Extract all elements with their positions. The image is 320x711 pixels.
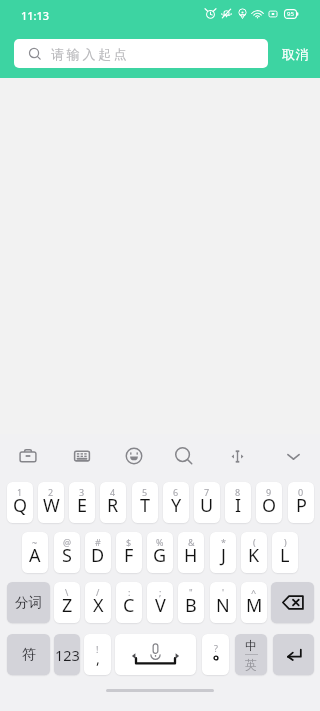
staticText: ) [284, 536, 287, 548]
button[interactable]: 4 [100, 482, 126, 523]
button[interactable]: ; [147, 582, 173, 623]
button[interactable]: Emoji [117, 439, 151, 473]
staticText: ; [159, 586, 162, 598]
staticText: * [221, 536, 226, 548]
staticText: D [91, 543, 105, 568]
staticText: 0 [298, 486, 304, 498]
staticText: 4 [110, 486, 116, 498]
button[interactable]: 5 [132, 482, 158, 523]
button[interactable]: Backspace [271, 582, 314, 623]
staticText: H [184, 543, 198, 568]
staticText: 3 [79, 486, 85, 498]
staticText: B [185, 593, 197, 618]
button[interactable]: 请输入起点 [14, 39, 268, 68]
staticText: S [62, 543, 72, 568]
button[interactable]: ! [84, 634, 111, 675]
button[interactable]: 8 [225, 482, 251, 523]
staticText: F [124, 543, 134, 568]
staticText: U [200, 493, 214, 518]
button[interactable]: * [210, 532, 236, 573]
staticText: 6 [173, 486, 179, 498]
staticText: 8 [235, 486, 241, 498]
staticText: G [153, 543, 167, 568]
staticText: , [96, 649, 100, 668]
button[interactable]: $ [116, 532, 142, 573]
staticText: # [95, 536, 101, 548]
button[interactable]: @ [54, 532, 80, 573]
staticText: $ [126, 536, 132, 548]
staticText: N [216, 593, 230, 618]
button[interactable]: 123 [54, 634, 80, 675]
staticText: 中 [245, 638, 257, 653]
staticText: 11:13 [21, 8, 50, 23]
button[interactable]: 符 [7, 634, 50, 675]
button[interactable]: ( [241, 532, 267, 573]
staticText: % [156, 536, 164, 548]
button[interactable]: ? [202, 634, 229, 675]
button[interactable]: Enter [273, 634, 314, 675]
staticText: 英 [245, 657, 257, 672]
staticText: 取消 [282, 46, 309, 62]
staticText: C [123, 593, 135, 618]
staticText: & [188, 536, 195, 548]
staticText: J [221, 543, 226, 568]
button[interactable]: & [178, 532, 204, 573]
button[interactable]: 分词 [7, 582, 50, 623]
button[interactable]: 9 [256, 482, 282, 523]
staticText: M [246, 593, 263, 618]
button[interactable]: Switch Chinese English [235, 634, 267, 675]
staticText: \ [65, 586, 69, 598]
staticText: ~ [32, 536, 38, 548]
button[interactable]: 2 [38, 482, 64, 523]
staticText: Q [13, 493, 28, 518]
button[interactable]: # [85, 532, 111, 573]
staticText: 7 [204, 486, 210, 498]
button[interactable]: Clipboard [11, 439, 45, 473]
staticText: E [77, 493, 88, 518]
staticText: 123 [55, 645, 80, 665]
button[interactable]: 6 [163, 482, 189, 523]
staticText: 9 [266, 486, 272, 498]
staticText: L [280, 543, 290, 568]
button[interactable]: : [116, 582, 142, 623]
button[interactable]: 取消 [272, 39, 318, 68]
button[interactable]: " [178, 582, 204, 623]
staticText: " [189, 586, 193, 598]
staticText: 1 [17, 486, 23, 498]
button[interactable]: 0 [288, 482, 314, 523]
button[interactable]: Hide keyboard [276, 439, 310, 473]
staticText: T [140, 493, 151, 518]
button[interactable]: ) [272, 532, 298, 573]
button[interactable]: ~ [22, 532, 48, 573]
staticText: X [93, 593, 104, 618]
staticText: P [296, 493, 307, 518]
staticText: V [155, 593, 166, 618]
staticText: R [107, 493, 119, 518]
button[interactable]: Keyboard layout [65, 439, 99, 473]
button[interactable]: \ [54, 582, 80, 623]
staticText: ^ [251, 586, 257, 598]
staticText: ! [96, 643, 99, 655]
staticText: : [128, 586, 131, 598]
staticText: @ [63, 536, 72, 548]
button[interactable]: / [85, 582, 111, 623]
staticText: A [29, 543, 41, 568]
button[interactable]: Move cursor [220, 439, 254, 473]
button[interactable]: 1 [7, 482, 33, 523]
staticText: ' [222, 586, 225, 598]
staticText: 95 [287, 10, 294, 18]
staticText: Y [171, 493, 182, 518]
staticText: / [96, 586, 100, 598]
staticText: 分词 [15, 594, 42, 611]
button[interactable]: 7 [194, 482, 220, 523]
button[interactable]: 3 [69, 482, 95, 523]
staticText: ( [253, 536, 256, 548]
staticText: I [235, 493, 242, 518]
button[interactable]: Search [167, 439, 201, 473]
button[interactable]: Space, voice input [115, 634, 196, 675]
button[interactable]: ' [210, 582, 236, 623]
staticText: 符 [22, 646, 36, 664]
button[interactable]: ^ [241, 582, 267, 623]
button[interactable]: % [147, 532, 173, 573]
staticText: K [248, 543, 260, 568]
